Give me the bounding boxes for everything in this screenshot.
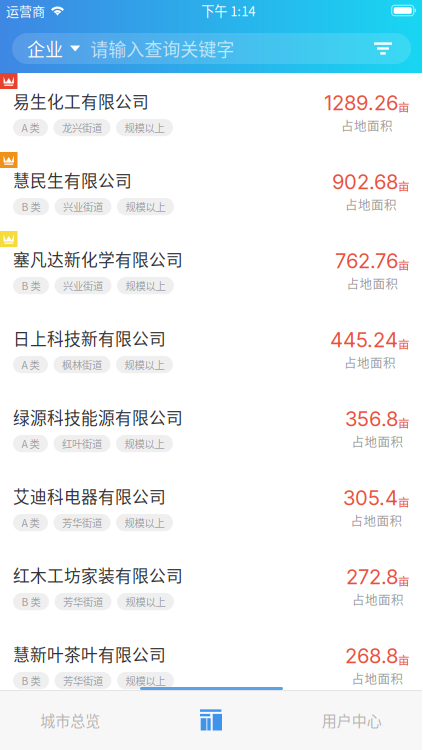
button[interactable]: 慧民生有限公司	[0, 152, 422, 231]
staticText: 易生化工有限公司	[13, 89, 149, 113]
staticText: 占地面积	[345, 195, 397, 213]
staticText: 445.24	[330, 328, 398, 352]
staticText: 占地面积	[344, 353, 396, 371]
staticText: 1289.26	[324, 91, 398, 115]
staticText: 规模以上	[125, 199, 165, 214]
staticText: A 类	[21, 120, 39, 135]
staticText: 运营商	[6, 1, 45, 20]
staticText: 红叶街道	[62, 436, 102, 451]
staticText: 亩	[398, 414, 410, 431]
staticText: 902.68	[332, 170, 398, 194]
button[interactable]: 红木工坊家装有限公司	[0, 547, 422, 626]
staticText: 亩	[398, 335, 410, 352]
staticText: 塞凡达新化学有限公司	[13, 247, 183, 271]
staticText: 规模以上	[124, 515, 164, 530]
staticText: 占地面积	[346, 274, 398, 292]
staticText: 占地面积	[351, 669, 403, 687]
button[interactable]: 企业列表	[141, 690, 281, 750]
staticText: 356.8	[345, 407, 398, 431]
staticText: 规模以上	[125, 278, 165, 293]
staticText: 亩	[398, 493, 410, 510]
staticText: A 类	[21, 436, 39, 451]
staticText: 762.76	[335, 249, 398, 273]
staticText: B 类	[21, 199, 40, 214]
button[interactable]: 慧新叶茶叶有限公司	[0, 626, 422, 705]
staticText: 慧新叶茶叶有限公司	[13, 642, 166, 666]
staticText: A 类	[21, 515, 39, 530]
staticText: 芳华街道	[63, 594, 103, 609]
staticText: 兴业街道	[63, 199, 103, 214]
staticText: 占地面积	[350, 511, 402, 529]
staticText: 占地面积	[352, 590, 404, 608]
staticText: 规模以上	[125, 594, 165, 609]
staticText: 规模以上	[124, 357, 164, 372]
staticText: 规模以上	[125, 673, 165, 688]
staticText: 占地面积	[351, 432, 403, 450]
staticText: 占地面积	[341, 116, 393, 134]
staticText: 亩	[398, 177, 410, 194]
staticText: 亩	[398, 651, 410, 668]
staticText: 用户中心	[322, 709, 382, 731]
button[interactable]: 易生化工有限公司	[0, 73, 422, 152]
staticText: A 类	[21, 357, 39, 372]
staticText: 城市总览	[40, 709, 100, 731]
staticText: 305.4	[343, 486, 398, 510]
button[interactable]: 城市总览	[0, 690, 141, 750]
staticText: 慧民生有限公司	[13, 168, 132, 192]
staticText: 亩	[398, 572, 410, 589]
staticText: 272.8	[346, 565, 398, 589]
staticText: 芳华街道	[62, 515, 102, 530]
staticText: 企业	[27, 35, 63, 62]
button[interactable]: 绿源科技能源有限公司	[0, 389, 422, 468]
staticText: 绿源科技能源有限公司	[13, 405, 183, 429]
button[interactable]: 用户中心	[281, 690, 422, 750]
staticText: 日上科技新有限公司	[13, 326, 166, 350]
staticText: 268.8	[345, 644, 398, 668]
staticText: B 类	[21, 278, 40, 293]
button[interactable]: 企业	[27, 29, 80, 68]
staticText: 亩	[398, 256, 410, 273]
staticText: 下午 1:14	[201, 1, 255, 20]
staticText: 芳华街道	[63, 673, 103, 688]
button[interactable]: 日上科技新有限公司	[0, 310, 422, 389]
staticText: 兴业街道	[63, 278, 103, 293]
staticText: 规模以上	[124, 120, 164, 135]
button[interactable]: 筛选	[366, 34, 392, 63]
staticText: 枫林街道	[62, 357, 102, 372]
button[interactable]: 艾迪科电器有限公司	[0, 468, 422, 547]
button[interactable]: 塞凡达新化学有限公司	[0, 231, 422, 310]
staticText: B 类	[21, 594, 40, 609]
staticText: 艾迪科电器有限公司	[13, 484, 166, 508]
staticText: 亩	[398, 98, 410, 115]
staticText: 龙兴街道	[62, 120, 102, 135]
staticText: 规模以上	[124, 436, 164, 451]
staticText: 请输入查询关键字	[90, 35, 234, 62]
staticText: 红木工坊家装有限公司	[13, 563, 183, 587]
staticText: B 类	[21, 673, 40, 688]
